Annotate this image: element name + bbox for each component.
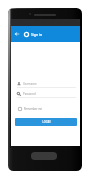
staticText: Password bbox=[23, 92, 36, 96]
staticText: Remember me bbox=[24, 107, 43, 111]
staticText: Username bbox=[23, 82, 37, 86]
button[interactable]: Home bbox=[31, 152, 57, 160]
button[interactable]: Navigate back bbox=[11, 26, 22, 42]
button[interactable]: LOGIN bbox=[15, 118, 77, 126]
staticText: Sign in bbox=[31, 32, 43, 37]
button[interactable]: Remember me bbox=[18, 107, 43, 111]
staticText: LOGIN bbox=[42, 120, 51, 124]
